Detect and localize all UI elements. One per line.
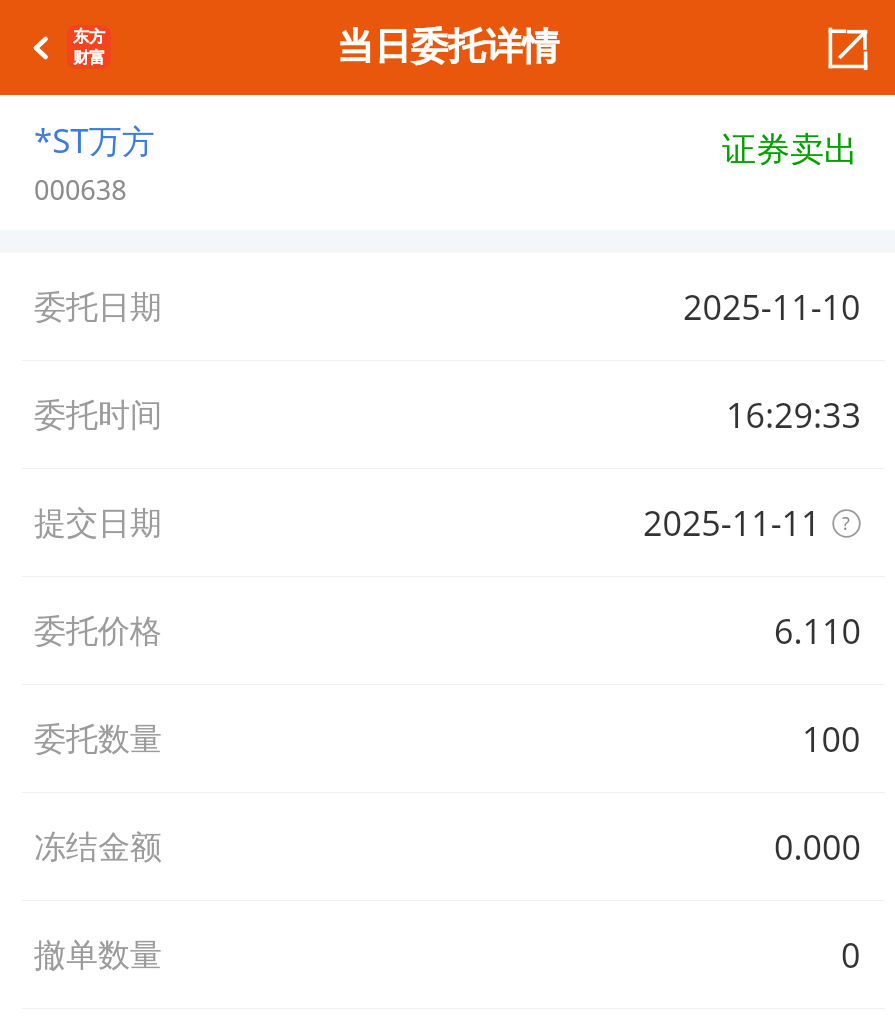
staticText: 2025-11-10 bbox=[683, 284, 861, 330]
staticText: 6.110 bbox=[774, 608, 861, 654]
button[interactable]: 委托时间 bbox=[0, 361, 895, 468]
button[interactable]: *ST万方 bbox=[0, 95, 895, 230]
staticText: 财富 bbox=[73, 48, 105, 68]
staticText: 0 bbox=[841, 932, 861, 978]
button[interactable]: 委托数量 bbox=[0, 685, 895, 792]
button[interactable]: Help bbox=[831, 508, 861, 538]
button[interactable]: 冻结金额 bbox=[0, 793, 895, 900]
button[interactable]: Share bbox=[815, 15, 881, 81]
staticText: 委托时间 bbox=[34, 395, 162, 435]
staticText: 16:29:33 bbox=[726, 392, 861, 438]
staticText: 证券卖出 bbox=[722, 128, 858, 171]
staticText: 东方 bbox=[73, 27, 105, 47]
staticText: 委托日期 bbox=[34, 287, 162, 327]
staticText: 撤单数量 bbox=[34, 935, 162, 975]
button[interactable]: 东方财富 bbox=[67, 25, 111, 69]
staticText: 委托价格 bbox=[34, 611, 162, 651]
staticText: 100 bbox=[802, 716, 861, 762]
button[interactable]: 撤单数量 bbox=[0, 901, 895, 1008]
staticText: 委托数量 bbox=[34, 719, 162, 759]
staticText: 冻结金额 bbox=[34, 827, 162, 867]
staticText: 0.000 bbox=[774, 824, 861, 870]
staticText: *ST万方 bbox=[34, 118, 155, 163]
staticText: ? bbox=[842, 511, 850, 536]
button[interactable]: 委托价格 bbox=[0, 577, 895, 684]
button[interactable]: Back bbox=[8, 14, 76, 82]
button[interactable]: 委托日期 bbox=[0, 253, 895, 360]
staticText: 000638 bbox=[34, 171, 127, 208]
staticText: 当日委托详情 bbox=[337, 23, 559, 70]
staticText: 提交日期 bbox=[34, 503, 162, 543]
staticText: 2025-11-11 bbox=[643, 500, 821, 546]
button[interactable]: 提交日期 bbox=[0, 469, 895, 576]
